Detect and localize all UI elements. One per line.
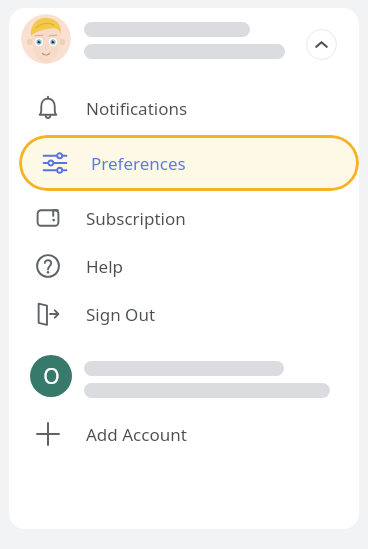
staticText: Add Account — [86, 423, 187, 446]
button[interactable]: Preferences — [19, 135, 359, 191]
button[interactable]: Subscription — [9, 194, 359, 242]
staticText: Help — [86, 255, 124, 278]
button[interactable]: O — [9, 338, 359, 410]
staticText: Preferences — [91, 152, 186, 175]
staticText: Subscription — [86, 207, 186, 230]
staticText: Notifications — [86, 97, 188, 120]
button[interactable]: Notifications — [9, 84, 359, 132]
staticText: O — [43, 362, 60, 391]
button[interactable]: Sign Out — [9, 290, 359, 338]
button[interactable]: Collapse — [306, 29, 337, 60]
staticText: Sign Out — [86, 303, 156, 326]
button[interactable]: Collapse — [9, 8, 359, 84]
button[interactable]: Help — [9, 242, 359, 290]
button[interactable]: Add Account — [9, 410, 359, 458]
